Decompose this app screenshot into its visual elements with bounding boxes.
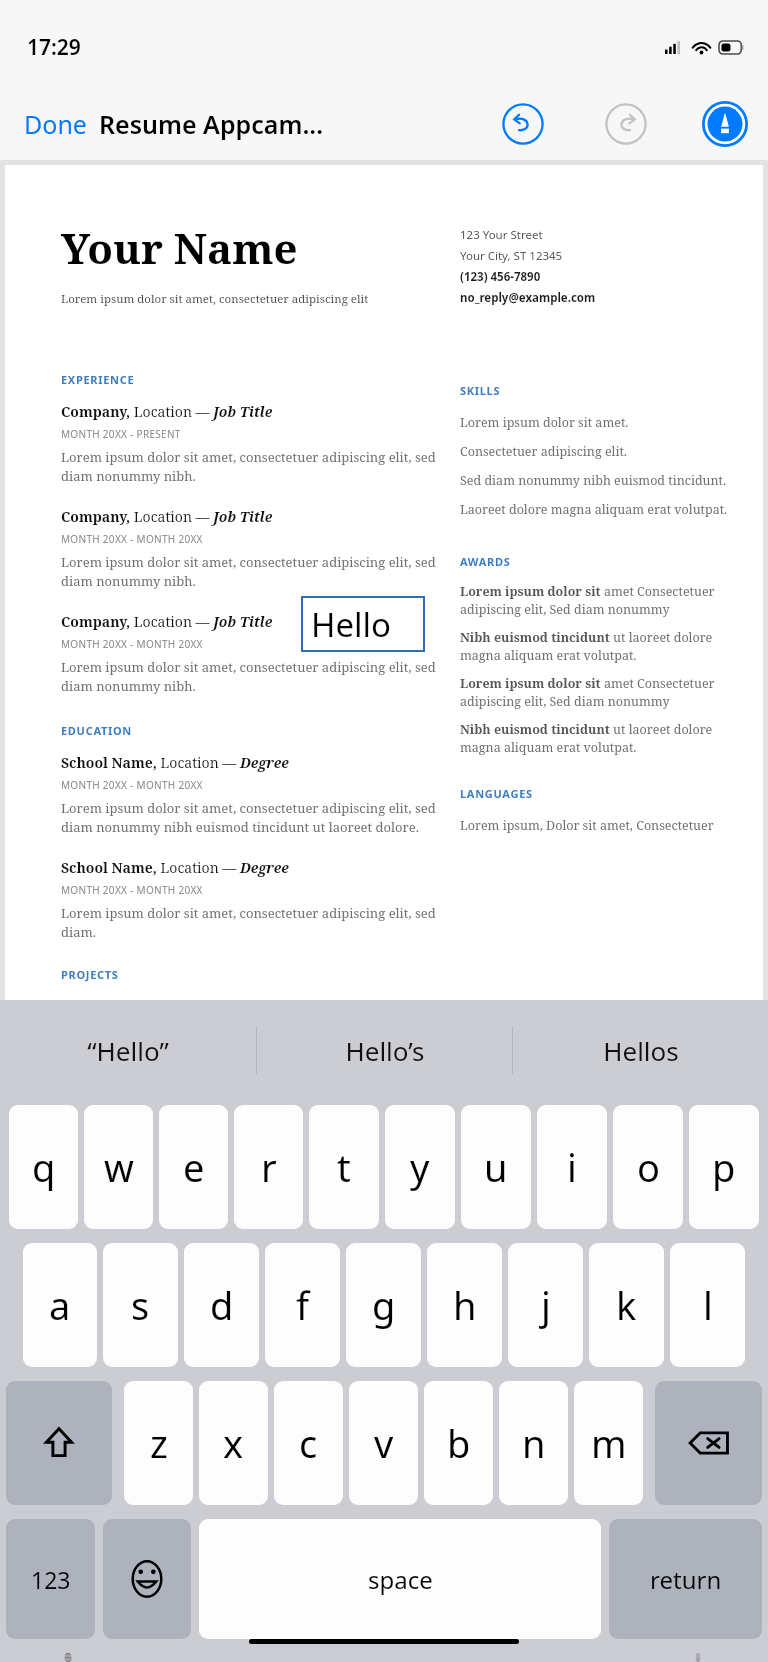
staticText: z <box>150 1417 168 1469</box>
staticText: School Name, Location — Degree <box>61 753 289 772</box>
staticText: Nibh euismod tincidunt ut laoreet dolore… <box>460 721 739 756</box>
staticText: Sed diam nonummy nibh euismod tincidunt. <box>460 472 727 489</box>
button[interactable]: i <box>537 1105 607 1229</box>
button[interactable]: r <box>234 1105 303 1229</box>
staticText: MONTH 20XX - PRESENT <box>61 427 181 441</box>
button[interactable]: n <box>499 1381 568 1505</box>
staticText: Consectetuer adipiscing elit. <box>460 443 627 460</box>
staticText: b <box>447 1417 471 1469</box>
staticText: Hellos <box>603 1033 679 1068</box>
button[interactable]: Change keyboard language <box>40 1653 96 1662</box>
staticText: EXPERIENCE <box>61 372 135 387</box>
button[interactable]: “Hello” <box>0 1000 256 1100</box>
staticText: i <box>567 1141 577 1193</box>
staticText: w <box>104 1141 134 1193</box>
staticText: Lorem ipsum dolor sit amet, consectetuer… <box>61 291 369 307</box>
staticText: Laoreet dolore magna aliquam erat volutp… <box>460 501 728 518</box>
staticText: g <box>372 1279 396 1331</box>
button[interactable]: z <box>124 1381 193 1505</box>
staticText: MONTH 20XX - MONTH 20XX <box>61 778 203 792</box>
button[interactable]: j <box>508 1243 583 1367</box>
button[interactable]: o <box>613 1105 683 1229</box>
button[interactable]: Delete <box>655 1381 762 1505</box>
staticText: s <box>131 1279 150 1331</box>
button[interactable]: a <box>23 1243 97 1367</box>
button[interactable]: b <box>424 1381 493 1505</box>
staticText: no_reply@example.com <box>460 290 596 306</box>
staticText: PROJECTS <box>61 967 119 982</box>
staticText: f <box>296 1279 310 1331</box>
button[interactable]: q <box>9 1105 78 1229</box>
button[interactable]: p <box>689 1105 759 1229</box>
button[interactable]: Markup <box>700 99 750 149</box>
staticText: y <box>410 1141 430 1193</box>
staticText: o <box>637 1141 660 1193</box>
staticText: Company, Location — Job Title <box>61 612 273 631</box>
staticText: m <box>591 1417 627 1469</box>
button[interactable]: Emoji <box>103 1519 191 1639</box>
staticText: p <box>712 1141 736 1193</box>
button[interactable]: Done <box>16 101 95 147</box>
button[interactable]: Hellos <box>513 1000 768 1100</box>
staticText: Lorem ipsum dolor sit amet, consectetuer… <box>61 658 438 695</box>
button[interactable]: m <box>574 1381 643 1505</box>
staticText: Lorem ipsum dolor sit amet, consectetuer… <box>61 904 438 941</box>
button[interactable]: t <box>309 1105 379 1229</box>
staticText: Hello <box>311 602 392 647</box>
button[interactable]: space <box>199 1519 601 1639</box>
button[interactable]: y <box>385 1105 455 1229</box>
staticText: n <box>522 1417 546 1469</box>
staticText: LANGUAGES <box>460 786 533 801</box>
staticText: return <box>650 1563 722 1596</box>
staticText: AWARDS <box>460 554 511 569</box>
button[interactable]: e <box>159 1105 228 1229</box>
button[interactable]: g <box>346 1243 421 1367</box>
button[interactable]: x <box>199 1381 268 1505</box>
button[interactable]: k <box>589 1243 664 1367</box>
staticText: Done <box>24 107 87 141</box>
button[interactable]: Hello <box>301 596 425 652</box>
staticText: Lorem ipsum dolor sit amet Consectetuer … <box>460 583 739 618</box>
button[interactable]: l <box>670 1243 745 1367</box>
staticText: k <box>616 1279 637 1331</box>
staticText: Your Name <box>61 219 298 276</box>
staticText: Lorem ipsum dolor sit amet. <box>460 414 629 431</box>
button[interactable]: h <box>427 1243 502 1367</box>
staticText: 17:29 <box>27 33 81 62</box>
staticText: Lorem ipsum dolor sit amet Consectetuer … <box>460 675 739 710</box>
staticText: t <box>337 1141 351 1193</box>
button[interactable]: Shift <box>6 1381 112 1505</box>
staticText: Hello’s <box>345 1033 425 1068</box>
staticText: Resume Appcam... <box>99 107 324 141</box>
button[interactable]: w <box>84 1105 153 1229</box>
staticText: 123 <box>31 1564 71 1595</box>
button[interactable]: 123 <box>6 1519 95 1639</box>
button[interactable]: u <box>461 1105 531 1229</box>
button[interactable]: f <box>265 1243 340 1367</box>
staticText: d <box>210 1279 234 1331</box>
button[interactable]: d <box>184 1243 259 1367</box>
button[interactable]: Undo <box>498 99 548 149</box>
button[interactable]: Redo <box>601 99 651 149</box>
button[interactable]: c <box>274 1381 343 1505</box>
staticText: r <box>261 1141 277 1193</box>
staticText: SKILLS <box>460 383 501 398</box>
staticText: Lorem ipsum, Dolor sit amet, Consectetue… <box>460 817 714 834</box>
button[interactable]: v <box>349 1381 418 1505</box>
staticText: Your City, ST 12345 <box>460 248 563 264</box>
button[interactable]: Dictate <box>670 1653 726 1662</box>
button[interactable]: Hello’s <box>257 1000 512 1100</box>
staticText: MONTH 20XX - MONTH 20XX <box>61 532 203 546</box>
staticText: “Hello” <box>87 1033 169 1068</box>
staticText: space <box>368 1563 433 1596</box>
staticText: Nibh euismod tincidunt ut laoreet dolore… <box>460 629 739 664</box>
button[interactable]: return <box>609 1519 762 1639</box>
staticText: Lorem ipsum dolor sit amet, consectetuer… <box>61 448 438 485</box>
staticText: u <box>484 1141 508 1193</box>
staticText: l <box>703 1279 713 1331</box>
staticText: MONTH 20XX - MONTH 20XX <box>61 637 203 651</box>
staticText: c <box>299 1417 318 1469</box>
staticText: EDUCATION <box>61 723 133 738</box>
button[interactable]: s <box>103 1243 178 1367</box>
staticText: Lorem ipsum dolor sit amet, consectetuer… <box>61 799 438 836</box>
